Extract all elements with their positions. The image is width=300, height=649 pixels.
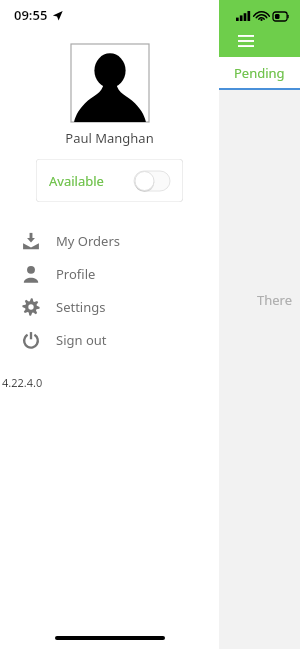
button[interactable]: My Orders (0, 224, 219, 257)
staticText: Settings (56, 298, 106, 316)
button[interactable]: Available (36, 159, 183, 202)
button[interactable]: Pending (219, 57, 300, 88)
staticText: 4.22.4.0 (2, 375, 43, 390)
button[interactable]: Settings (0, 290, 219, 323)
staticText: Available (49, 172, 104, 190)
button[interactable]: Profile (0, 257, 219, 290)
staticText: 09:55 (14, 6, 48, 24)
staticText: Sign out (56, 331, 107, 349)
staticText: Profile (56, 265, 96, 283)
button[interactable]: Open navigation menu (233, 28, 259, 54)
staticText: My Orders (56, 232, 120, 250)
staticText: There (257, 291, 293, 309)
button[interactable]: Sign out (0, 323, 219, 356)
staticText: Paul Manghan (65, 129, 154, 147)
staticText: Pending (234, 64, 285, 82)
